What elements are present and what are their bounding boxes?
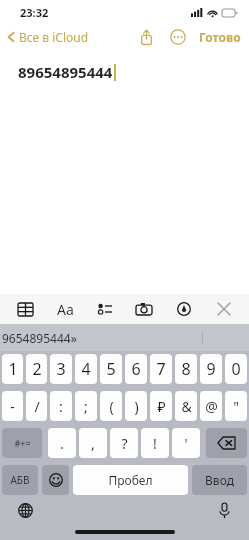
staticText: Пробел: [108, 472, 153, 488]
staticText: 2: [32, 358, 42, 380]
staticText: 1: [8, 358, 18, 380]
button[interactable]: 4: [75, 354, 97, 384]
button[interactable]: &: [175, 391, 197, 421]
button[interactable]: /: [26, 391, 47, 421]
staticText: ": [233, 397, 239, 416]
button[interactable]: Close keyboard: [209, 294, 239, 324]
button[interactable]: (: [100, 391, 122, 421]
staticText: Готово: [199, 29, 241, 45]
staticText: ?: [121, 434, 128, 453]
button[interactable]: .: [48, 428, 76, 458]
button[interactable]: 0: [225, 354, 247, 384]
staticText: АБВ: [10, 473, 30, 487]
staticText: ': [184, 434, 188, 453]
button[interactable]: 7: [150, 354, 172, 384]
button[interactable]: 2: [26, 354, 47, 384]
button[interactable]: Share: [133, 24, 159, 50]
button[interactable]: Checklist: [90, 294, 120, 324]
button[interactable]: Change language: [14, 499, 36, 521]
button[interactable]: 1: [2, 354, 23, 384]
staticText: 7: [156, 358, 166, 380]
staticText: (: [109, 397, 114, 416]
button[interactable]: 9: [200, 354, 222, 384]
button[interactable]: ₽: [150, 391, 172, 421]
button[interactable]: Готово: [197, 25, 243, 49]
button[interactable]: Emoji: [42, 465, 69, 495]
button[interactable]: Camera: [129, 294, 159, 324]
staticText: 4: [81, 358, 91, 380]
staticText: 5: [106, 358, 116, 380]
staticText: ,: [91, 434, 95, 453]
staticText: ): [134, 397, 139, 416]
button[interactable]: АБВ: [2, 465, 38, 495]
button[interactable]: Backspace: [206, 428, 247, 458]
button[interactable]: ?: [110, 428, 138, 458]
button[interactable]: @: [200, 391, 222, 421]
staticText: 89654895444: [18, 62, 113, 82]
button[interactable]: !: [141, 428, 169, 458]
staticText: /: [34, 397, 40, 416]
button[interactable]: 8: [175, 354, 197, 384]
button[interactable]: :: [50, 391, 72, 421]
button[interactable]: Пробел: [73, 465, 188, 495]
button[interactable]: 6: [125, 354, 147, 384]
staticText: Ввод: [205, 472, 234, 488]
button[interactable]: ": [225, 391, 247, 421]
button[interactable]: ': [172, 428, 200, 458]
staticText: ₽: [157, 397, 166, 416]
button[interactable]: Все в iCloud: [6, 29, 89, 45]
button[interactable]: Dictation: [213, 499, 235, 521]
staticText: !: [153, 434, 157, 453]
staticText: 6: [131, 358, 141, 380]
staticText: @: [205, 397, 218, 416]
button[interactable]: More: [165, 24, 191, 50]
staticText: 0: [231, 358, 241, 380]
button[interactable]: Ввод: [192, 465, 247, 495]
staticText: ;: [84, 397, 88, 416]
button[interactable]: ): [125, 391, 147, 421]
staticText: Aa: [57, 300, 74, 319]
staticText: 8: [181, 358, 191, 380]
button[interactable]: Format: [50, 294, 80, 324]
staticText: &: [181, 397, 192, 416]
button[interactable]: ,: [79, 428, 107, 458]
staticText: #+=: [14, 437, 31, 449]
button[interactable]: ;: [75, 391, 97, 421]
staticText: 3: [56, 358, 66, 380]
staticText: Все в iCloud: [19, 29, 89, 45]
staticText: 23:32: [20, 5, 49, 20]
staticText: -: [10, 397, 15, 416]
button[interactable]: Markup: [169, 294, 199, 324]
button[interactable]: Table: [10, 294, 40, 324]
staticText: :: [59, 397, 63, 416]
button[interactable]: 5: [100, 354, 122, 384]
button[interactable]: 9654895444»: [2, 330, 77, 346]
button[interactable]: 3: [50, 354, 72, 384]
staticText: 9: [206, 358, 216, 380]
staticText: .: [60, 434, 64, 453]
button[interactable]: #+=: [2, 428, 42, 458]
button[interactable]: -: [2, 391, 23, 421]
